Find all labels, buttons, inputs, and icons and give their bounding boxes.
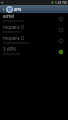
other: APN icon: [6, 6, 13, 13]
staticText: 3 APN: [3, 46, 16, 52]
staticText: mopera U: [3, 35, 24, 41]
staticText: mopera.flat.foma: [3, 41, 30, 44]
button[interactable]: mopera U: [0, 24, 68, 35]
staticText: 1:32 PM: [55, 1, 67, 5]
staticText: airtelgprs.com: [3, 19, 25, 22]
button[interactable]: Back: [0, 5, 6, 13]
button[interactable]: 3 APN: [0, 46, 68, 57]
staticText: airtel: [3, 13, 14, 19]
staticText: mopera U: [3, 24, 24, 30]
button[interactable]: mopera U: [0, 35, 68, 46]
staticText: three.co.uk: [3, 52, 20, 55]
button[interactable]: airtel: [0, 13, 68, 24]
staticText: mopera.net: [3, 30, 21, 33]
staticText: APN: [14, 7, 22, 12]
